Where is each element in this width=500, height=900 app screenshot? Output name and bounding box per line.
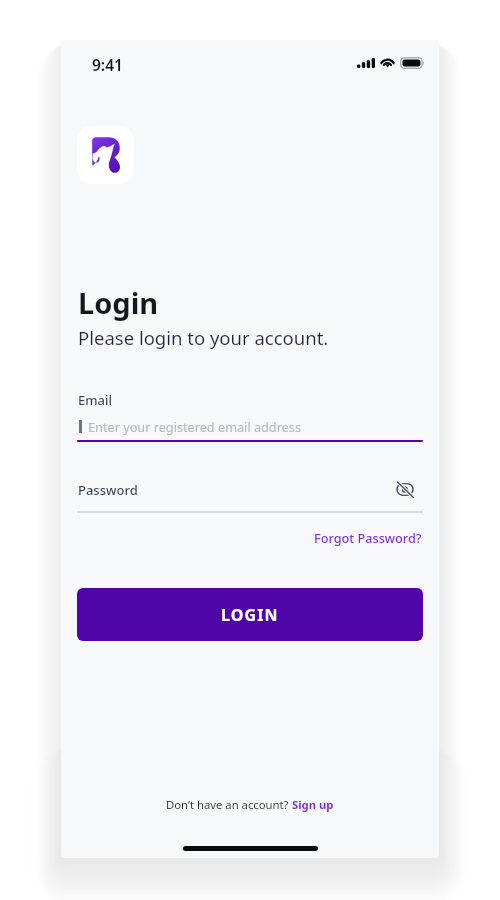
- staticText: LOGIN: [221, 604, 279, 626]
- staticText: Forgot Password?: [314, 529, 422, 546]
- button[interactable]: Sign up: [292, 797, 334, 812]
- button[interactable]: Enter your registered email address: [77, 414, 424, 442]
- staticText: Password: [78, 481, 138, 499]
- staticText: Sign up: [292, 797, 334, 812]
- staticText: Email: [78, 391, 113, 409]
- button[interactable]: Forgot Password?: [311, 527, 422, 547]
- button[interactable]: Show password: [392, 476, 418, 502]
- button[interactable]: LOGIN: [77, 588, 423, 641]
- staticText: Enter your registered email address: [88, 418, 301, 435]
- staticText: Don’t have an account?: [166, 797, 292, 812]
- staticText: 9:41: [92, 54, 123, 75]
- staticText: Login: [78, 283, 159, 322]
- staticText: Please login to your account.: [78, 325, 329, 350]
